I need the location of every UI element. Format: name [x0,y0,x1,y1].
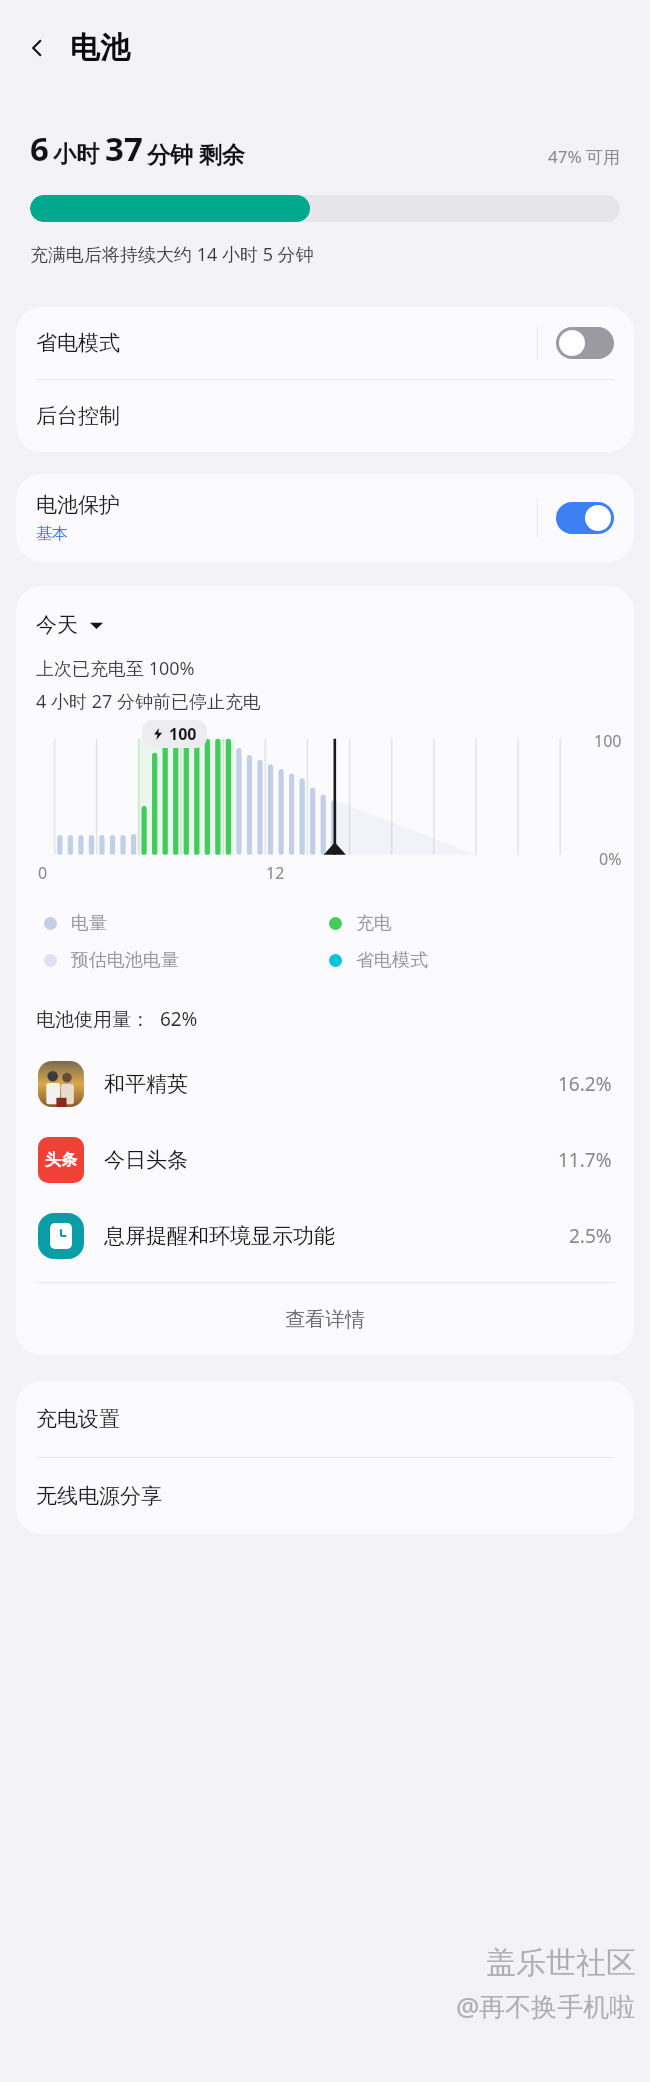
staticText: 4 小时 27 分钟前已停止充电 [36,689,261,714]
staticText: 小时 [53,140,99,169]
staticText: 电池 [70,29,130,67]
staticText: 充电 [356,912,392,935]
staticText: 盖乐世社区 [486,1944,636,1982]
button[interactable]: 头条 [16,1122,634,1198]
staticText: 充满电后将持续大约 14 小时 5 分钟 [30,242,314,267]
button[interactable]: 省电模式 [16,307,634,379]
button[interactable]: On [556,502,614,534]
staticText: 省电模式 [36,330,537,356]
staticText: 电池保护 [36,492,120,518]
staticText: 今天 [36,612,78,638]
staticText: 100 [169,723,197,745]
button[interactable]: 充电设置 [16,1381,634,1457]
button[interactable]: 电池保护 [16,474,634,562]
staticText: 上次已充电至 100% [36,656,195,681]
staticText: 省电模式 [356,949,428,972]
staticText: 11.7% [558,1147,612,1173]
staticText: 100 [594,730,622,752]
staticText: 后台控制 [36,403,120,429]
staticText: 16.2% [558,1071,612,1097]
staticText: 电量 [71,912,107,935]
staticText: 息屏提醒和环境显示功能 [104,1223,569,1249]
staticText: @再不换手机啦 [456,1988,636,2024]
staticText: 47% 可用 [548,145,620,168]
button[interactable]: 查看详情 [16,1283,634,1355]
staticText: 和平精英 [104,1071,558,1097]
staticText: 查看详情 [285,1307,365,1332]
staticText: 0% [599,848,622,870]
staticText: 电池使用量： 62% [36,1006,198,1032]
staticText: 6 [30,126,49,171]
staticText: 预估电池电量 [71,949,179,972]
staticText: 头条 [45,1150,77,1170]
button[interactable]: 无线电源分享 [16,1458,634,1534]
button[interactable]: 后台控制 [16,380,634,452]
button[interactable]: 和平精英 [16,1046,634,1122]
staticText: 分钟 剩余 [147,138,245,169]
staticText: 无线电源分享 [36,1483,162,1509]
staticText: 今日头条 [104,1147,558,1173]
button[interactable]: 息屏提醒和环境显示功能 [16,1198,634,1274]
staticText: 充电设置 [36,1406,120,1432]
button[interactable]: 今天 [32,608,107,642]
button[interactable]: Back [14,24,62,72]
staticText: 2.5% [569,1223,612,1249]
staticText: 0 [38,862,48,884]
staticText: 37 [105,126,143,171]
staticText: 12 [266,862,285,884]
button[interactable]: Off [556,327,614,359]
staticText: 基本 [36,524,68,544]
